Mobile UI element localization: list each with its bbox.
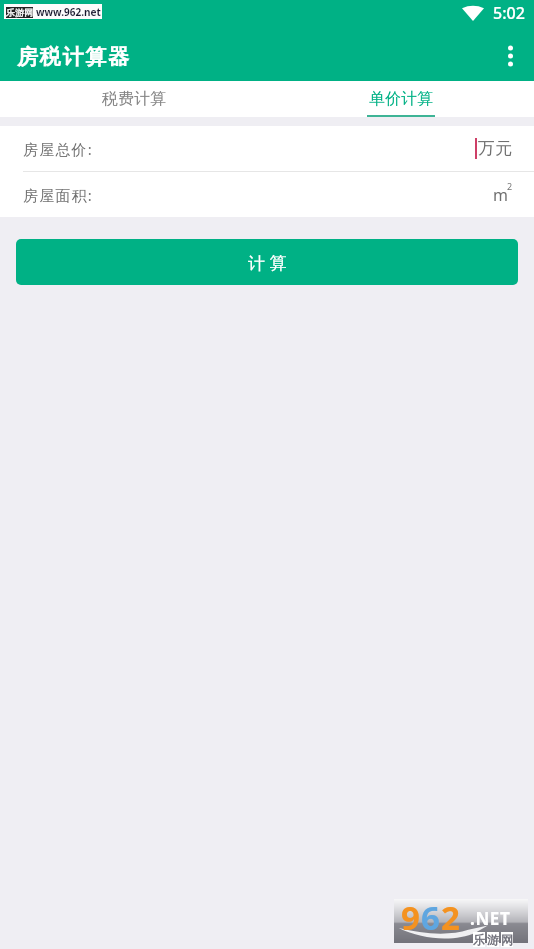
staticText: m: [493, 184, 508, 206]
staticText: 6: [421, 895, 441, 939]
button[interactable]: 单价计算: [267, 81, 534, 117]
button[interactable]: 房屋面积:: [23, 172, 512, 217]
staticText: 游: [487, 932, 499, 947]
staticText: 2: [441, 895, 461, 939]
staticText: 房税计算器: [16, 44, 130, 70]
button[interactable]: 房屋总价:: [23, 126, 512, 171]
staticText: www.962.net: [36, 5, 101, 19]
staticText: 9: [401, 895, 421, 939]
staticText: 房屋面积:: [23, 185, 94, 205]
staticText: 房屋总价:: [23, 139, 94, 159]
staticText: .NET: [470, 907, 511, 930]
staticText: 乐: [473, 932, 485, 947]
staticText: 2: [507, 180, 513, 192]
staticText: 计 算: [248, 251, 287, 274]
staticText: 乐游网: [6, 7, 33, 18]
button[interactable]: 税费计算: [0, 81, 267, 117]
button[interactable]: More options: [486, 30, 534, 78]
staticText: 5:02: [493, 2, 525, 24]
staticText: 万元: [478, 138, 512, 159]
staticText: 单价计算: [369, 89, 433, 109]
staticText: 网: [501, 932, 513, 947]
staticText: 税费计算: [102, 89, 166, 109]
button[interactable]: 计 算: [16, 239, 518, 285]
